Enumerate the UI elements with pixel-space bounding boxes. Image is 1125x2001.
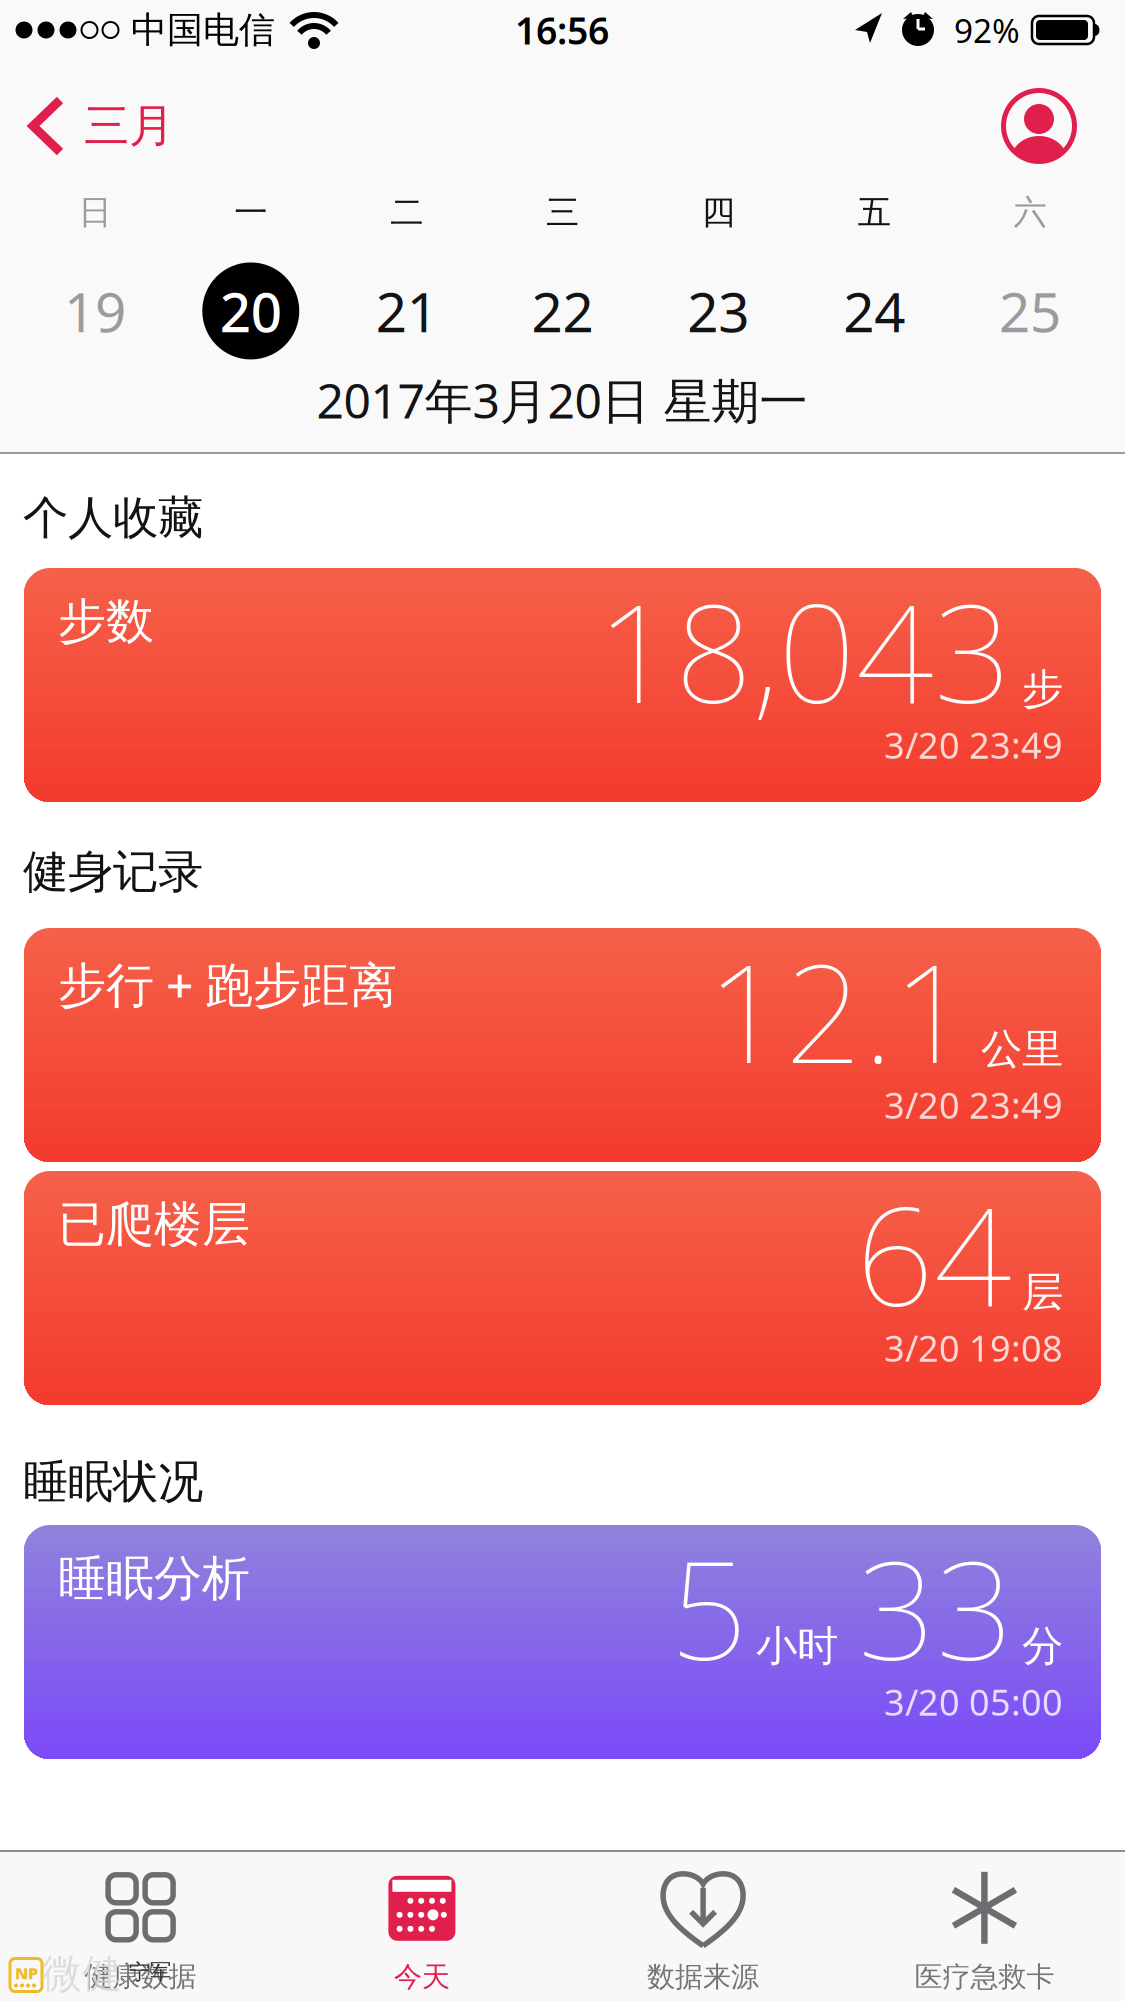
staticText: 64 xyxy=(856,1163,1012,1344)
button[interactable]: 步行 + 跑步距离 xyxy=(24,928,1101,1162)
button[interactable]: 21 xyxy=(329,259,485,363)
staticText: 5 xyxy=(670,1517,748,1698)
staticText: 小时 xyxy=(756,1621,838,1672)
button[interactable]: 20 xyxy=(173,259,329,363)
staticText: 19 xyxy=(64,275,126,347)
staticText: 已爬楼层 xyxy=(58,1195,250,1254)
staticText: 23 xyxy=(687,275,749,347)
staticText: 今天 xyxy=(394,1960,450,1994)
staticText: 3/20 23:49 xyxy=(884,1081,1063,1129)
staticText: 微健 xyxy=(42,1949,122,1998)
staticText: 3/20 19:08 xyxy=(884,1324,1063,1372)
staticText: 步 xyxy=(1022,664,1063,715)
staticText: 步数 xyxy=(58,592,154,651)
staticText: 睡眠状况 xyxy=(23,1454,203,1510)
button[interactable]: 25 xyxy=(952,259,1108,363)
staticText: 三月 xyxy=(84,98,174,154)
staticText: 24 xyxy=(843,275,905,347)
staticText: 层 xyxy=(1022,1267,1063,1318)
button[interactable]: 睡眠分析 xyxy=(24,1525,1101,1759)
staticText: 3/20 23:49 xyxy=(884,721,1063,769)
staticText: 22 xyxy=(531,275,593,347)
button[interactable]: 步数 xyxy=(24,568,1101,802)
staticText: 健康数据 xyxy=(85,1959,197,1994)
staticText: 健身记录 xyxy=(23,844,203,900)
staticText: 五 xyxy=(858,192,891,233)
staticText: 一 xyxy=(234,192,267,233)
staticText: 12.1 xyxy=(707,920,971,1101)
staticText: 宁军 xyxy=(129,1959,171,1985)
staticText: 18,043 xyxy=(597,560,1012,741)
button[interactable]: 今天 xyxy=(388,1876,455,1994)
staticText: 分 xyxy=(1022,1621,1063,1672)
staticText: 个人收藏 xyxy=(23,490,203,546)
button[interactable]: 已爬楼层 xyxy=(24,1171,1101,1405)
button[interactable]: 数据来源 xyxy=(647,1870,759,1994)
button[interactable]: 19 xyxy=(17,259,173,363)
staticText: 数据来源 xyxy=(647,1960,759,1994)
staticText: 25 xyxy=(999,275,1061,347)
staticText: 四 xyxy=(702,192,735,233)
staticText: 21 xyxy=(376,275,438,347)
staticText: 16:56 xyxy=(515,5,609,55)
staticText: 步行 + 跑步距离 xyxy=(58,952,397,1016)
staticText: 六 xyxy=(1014,192,1047,233)
button[interactable]: 健康数据 xyxy=(85,1874,197,1994)
staticText: 公里 xyxy=(981,1024,1063,1075)
staticText: 中国电信 xyxy=(131,8,275,52)
staticText: 33 xyxy=(858,1517,1014,1698)
button[interactable]: 医疗急救卡 xyxy=(914,1872,1054,1994)
button[interactable]: 健康资料 xyxy=(1001,88,1077,164)
staticText: 二 xyxy=(390,192,423,233)
staticText: 三 xyxy=(546,192,579,233)
button[interactable]: 22 xyxy=(485,259,640,363)
staticText: 92% xyxy=(954,8,1020,52)
staticText: 医疗急救卡 xyxy=(914,1960,1054,1994)
staticText: 睡眠分析 xyxy=(58,1549,250,1608)
staticText: 日 xyxy=(78,192,111,233)
button[interactable]: 24 xyxy=(796,259,952,363)
staticText: 3/20 05:00 xyxy=(884,1678,1063,1726)
staticText: 2017年3月20日 星期一 xyxy=(316,368,807,432)
button[interactable]: 三月 xyxy=(28,96,174,156)
staticText: NP xyxy=(15,1962,38,1984)
button[interactable]: 23 xyxy=(640,259,796,363)
staticText: 20 xyxy=(220,275,282,347)
